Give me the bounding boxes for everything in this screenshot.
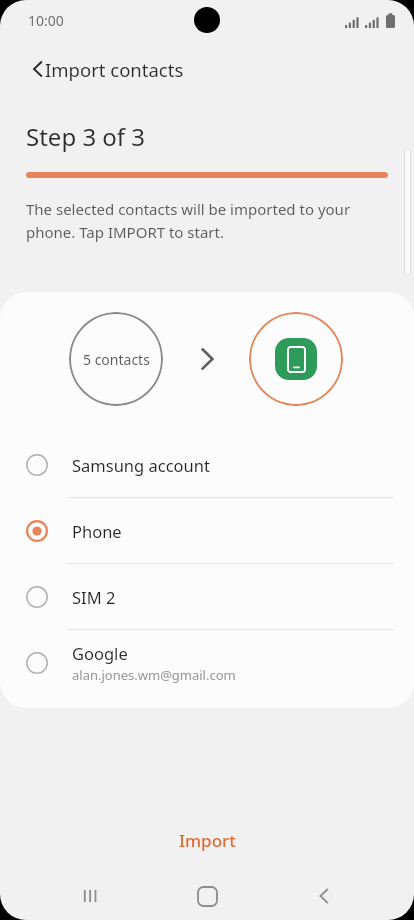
- staticText: Samsung account: [72, 454, 210, 476]
- button[interactable]: SIM 2: [0, 564, 414, 629]
- button[interactable]: Samsung account: [0, 432, 414, 497]
- staticText: Step 3 of 3: [26, 120, 146, 153]
- staticText: The selected contacts will be imported t…: [26, 199, 351, 219]
- button[interactable]: [249, 312, 343, 406]
- staticText: Import contacts: [45, 57, 184, 82]
- button[interactable]: 5 contacts: [69, 312, 163, 406]
- button[interactable]: Back: [305, 877, 343, 915]
- staticText: alan.jones.wm@gmail.com: [72, 666, 236, 684]
- button[interactable]: Google: [0, 630, 414, 695]
- button[interactable]: Phone: [0, 498, 414, 563]
- staticText: Google: [72, 642, 128, 664]
- staticText: SIM 2: [72, 586, 116, 608]
- button[interactable]: Back: [22, 53, 54, 85]
- button[interactable]: Home: [188, 877, 226, 915]
- button[interactable]: Import: [0, 820, 414, 860]
- staticText: Import: [179, 829, 236, 852]
- staticText: 10:00: [28, 11, 64, 30]
- staticText: Phone: [72, 520, 122, 542]
- staticText: 5 contacts: [83, 350, 150, 369]
- staticText: phone. Tap IMPORT to start.: [26, 222, 224, 242]
- button[interactable]: Recent apps: [72, 877, 110, 915]
